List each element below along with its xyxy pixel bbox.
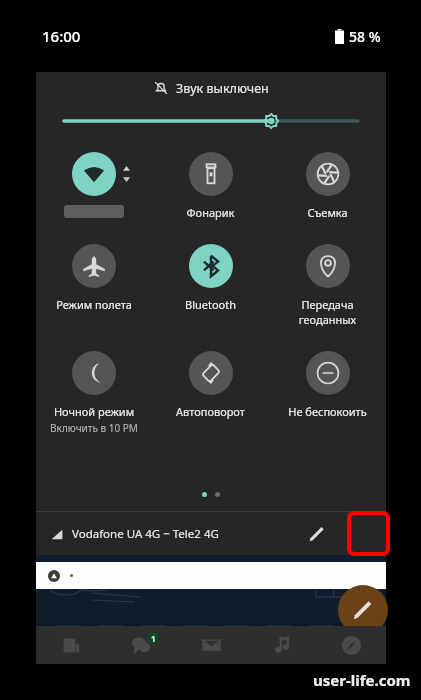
button[interactable]: Chats bbox=[106, 626, 176, 664]
button[interactable]: Compose bbox=[338, 585, 388, 635]
button[interactable]: Music bbox=[246, 626, 316, 664]
staticText: 16:00 bbox=[42, 26, 81, 46]
staticText: Автоповорот bbox=[152, 404, 269, 419]
staticText: user-life.com bbox=[313, 670, 411, 690]
staticText: 1 bbox=[151, 633, 156, 644]
button[interactable]: Bluetooth bbox=[152, 244, 269, 312]
button[interactable]: Do not disturb bbox=[269, 351, 386, 419]
button[interactable]: Wi-Fi bbox=[36, 152, 152, 218]
button[interactable]: Explore bbox=[316, 626, 386, 664]
staticText: Звук выключен bbox=[176, 80, 269, 97]
button[interactable]: Edit bbox=[300, 517, 334, 551]
button[interactable]: Airplane mode bbox=[36, 244, 152, 312]
button[interactable]: Night light bbox=[36, 351, 152, 435]
staticText: Съемка bbox=[269, 205, 386, 220]
button[interactable] bbox=[36, 562, 386, 589]
button[interactable]: Mail bbox=[176, 626, 246, 664]
button[interactable]: Flashlight bbox=[152, 152, 269, 220]
button[interactable]: Auto rotate bbox=[152, 351, 269, 419]
staticText: Передача геоданных bbox=[269, 297, 386, 327]
button[interactable]: Settings bbox=[338, 517, 372, 551]
staticText: Режим полета bbox=[36, 297, 152, 312]
staticText: Bluetooth bbox=[152, 297, 269, 312]
staticText: Включить в 10 PM bbox=[36, 421, 152, 435]
staticText: 58 % bbox=[349, 27, 381, 46]
button[interactable]: Brightness bbox=[36, 104, 386, 138]
staticText: Не беспокоить bbox=[269, 404, 386, 419]
button[interactable]: Screen record bbox=[269, 152, 386, 220]
staticText: Фонарик bbox=[152, 205, 269, 220]
staticText: Vodafone UA 4G − Tele2 4G bbox=[72, 526, 219, 542]
staticText: Ночной режим bbox=[36, 404, 152, 419]
button[interactable]: News bbox=[36, 626, 106, 664]
button[interactable]: Location bbox=[269, 244, 386, 327]
